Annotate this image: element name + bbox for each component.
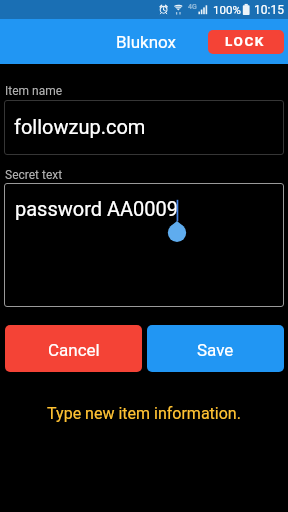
staticText: Save <box>197 340 234 360</box>
staticText: Bluknox <box>116 32 177 52</box>
button[interactable]: followzup.com <box>4 100 284 155</box>
button[interactable]: Cancel <box>5 325 142 372</box>
staticText: Cancel <box>48 340 100 360</box>
staticText: LOCK <box>225 33 266 49</box>
button[interactable]: password AA0009 <box>4 183 284 307</box>
staticText: Type new item information. <box>0 404 288 423</box>
staticText: 10:15 <box>254 3 284 17</box>
staticText: 100% <box>213 3 241 16</box>
staticText: Secret text <box>5 168 63 182</box>
staticText: Item name <box>5 84 63 98</box>
button[interactable]: LOCK <box>208 30 284 54</box>
staticText: followzup.com <box>14 115 146 138</box>
button[interactable]: Save <box>147 325 284 372</box>
staticText: 4G <box>188 3 197 11</box>
staticText: password AA0009 <box>15 197 179 220</box>
